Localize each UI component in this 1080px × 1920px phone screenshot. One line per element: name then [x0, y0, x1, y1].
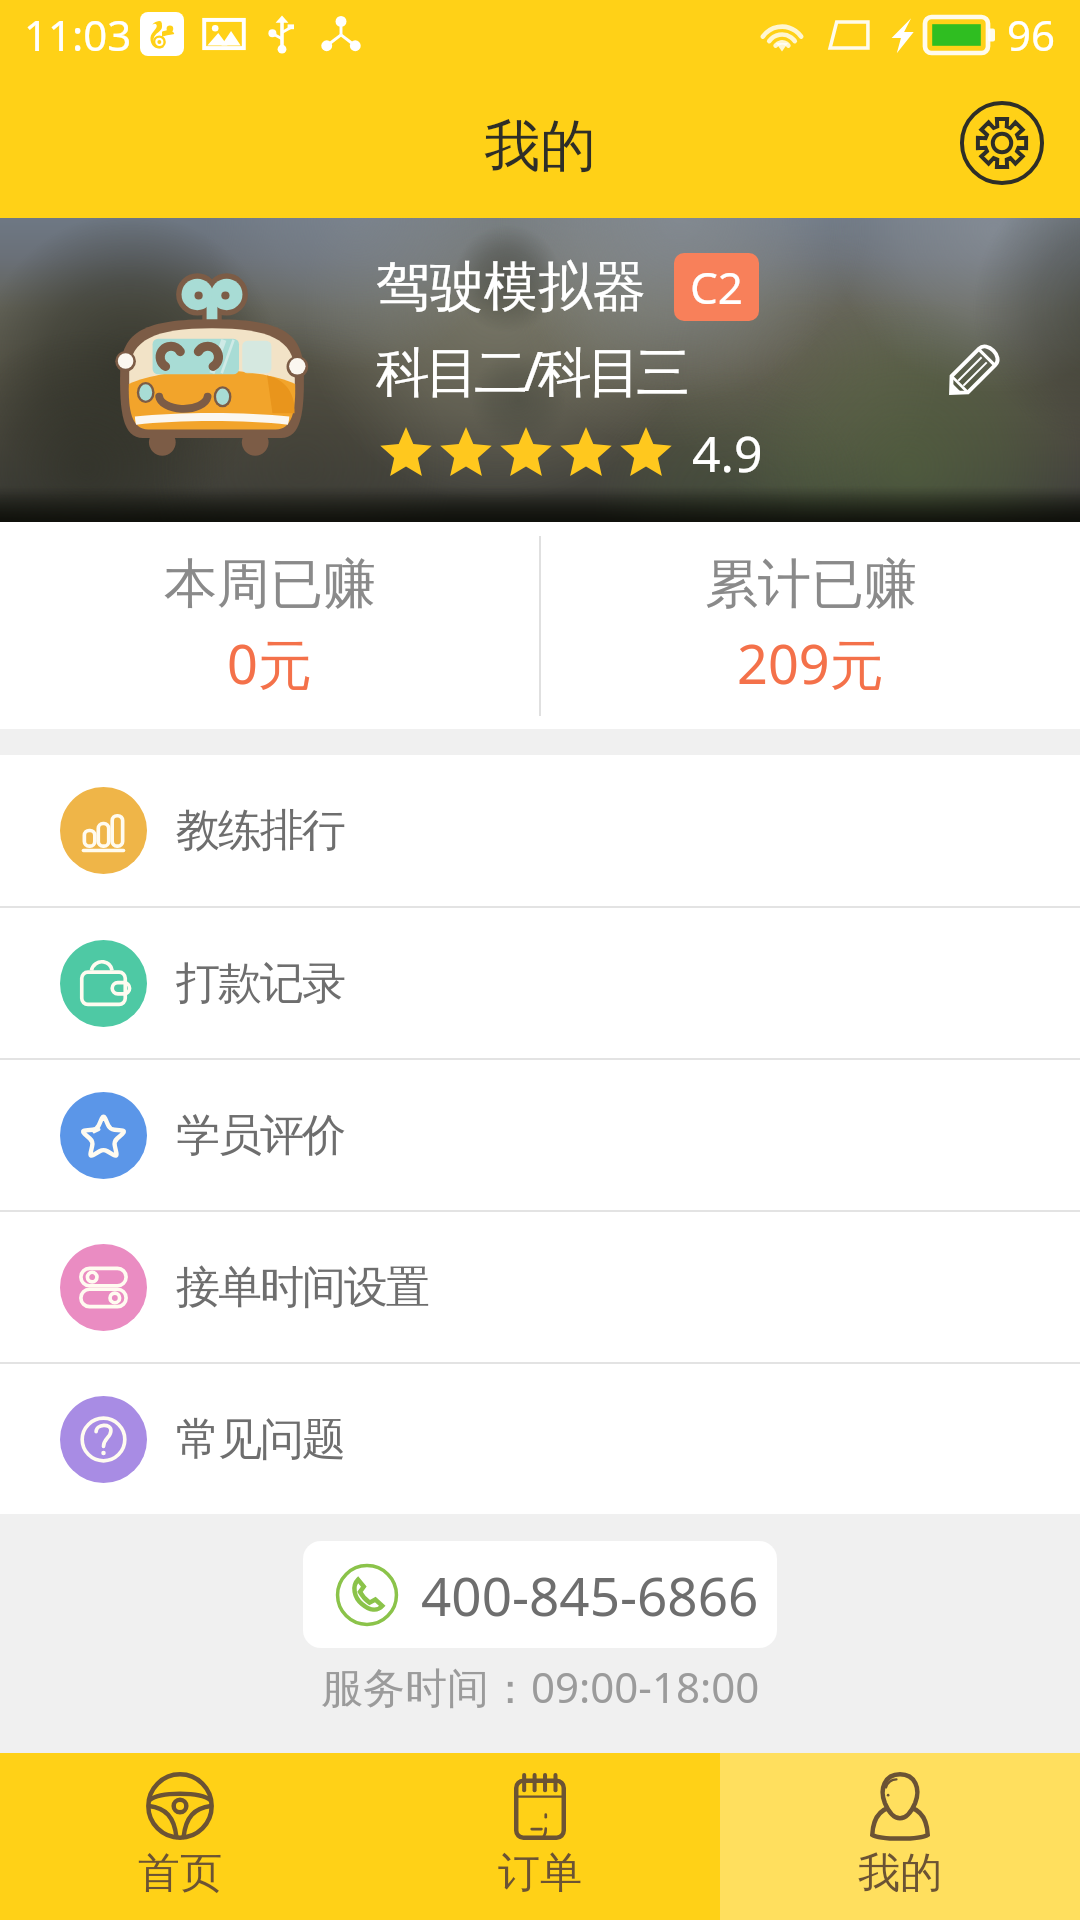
- staticText: 学员评价: [177, 1108, 345, 1163]
- staticText: 驾驶模拟器: [376, 253, 646, 321]
- button[interactable]: 累计已赚: [541, 522, 1080, 729]
- button[interactable]: Settings: [958, 99, 1046, 187]
- staticText: 本周已赚: [164, 551, 376, 618]
- staticText: 教练排行: [177, 803, 345, 858]
- button[interactable]: 常见问题: [0, 1364, 1080, 1514]
- staticText: 400-845-6866: [421, 1559, 759, 1631]
- staticText: 0元: [227, 626, 312, 700]
- button[interactable]: 教练排行: [0, 755, 1080, 906]
- button[interactable]: 我的: [720, 1753, 1080, 1920]
- staticText: 订单: [498, 1847, 582, 1900]
- button[interactable]: 接单时间设置: [0, 1212, 1080, 1362]
- staticText: 11:03: [24, 6, 132, 63]
- staticText: 科目二/科目三: [376, 333, 686, 407]
- button[interactable]: 首页: [0, 1753, 360, 1920]
- staticText: 打款记录: [177, 956, 345, 1011]
- button[interactable]: 本周已赚: [0, 522, 539, 729]
- button[interactable]: Edit profile: [938, 334, 1010, 406]
- button[interactable]: 订单: [360, 1753, 720, 1920]
- staticText: 4.9: [692, 419, 763, 487]
- button[interactable]: 打款记录: [0, 908, 1080, 1058]
- button[interactable]: 学员评价: [0, 1060, 1080, 1210]
- button[interactable]: 400-845-6866: [303, 1541, 777, 1648]
- staticText: 我的: [484, 111, 596, 182]
- staticText: 96: [1007, 6, 1056, 63]
- staticText: 服务时间：09:00-18:00: [321, 1658, 760, 1715]
- staticText: 接单时间设置: [177, 1260, 429, 1315]
- staticText: 首页: [138, 1847, 222, 1900]
- staticText: 我的: [858, 1847, 942, 1900]
- staticText: 常见问题: [177, 1412, 345, 1467]
- staticText: C2: [690, 257, 743, 317]
- staticText: 累计已赚: [705, 551, 917, 618]
- staticText: 209元: [737, 626, 884, 700]
